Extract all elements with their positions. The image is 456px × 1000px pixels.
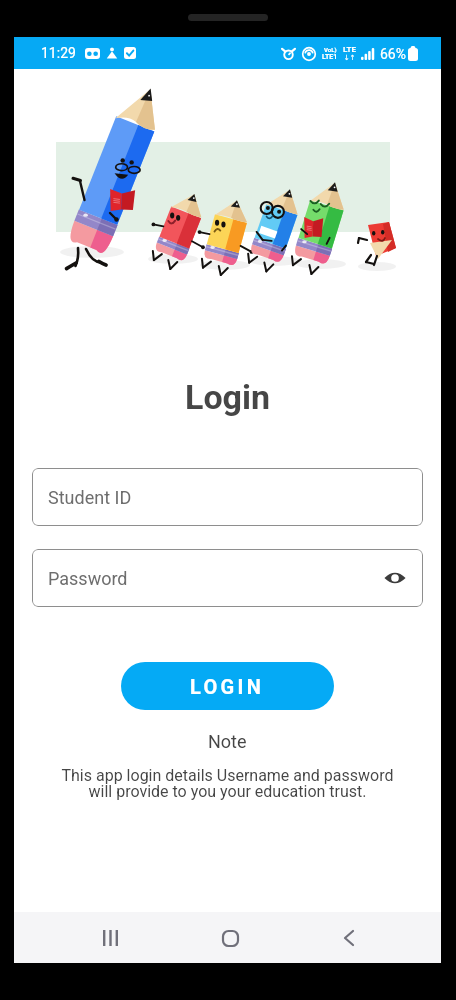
staticText: Note (208, 731, 247, 752)
button[interactable]: LOGIN (121, 662, 334, 710)
button[interactable]: Recents (86, 914, 134, 962)
button[interactable]: Show password (379, 562, 411, 594)
button[interactable]: Home (206, 914, 254, 962)
staticText: ↓↑ (344, 54, 356, 62)
staticText: LTE (343, 45, 356, 54)
staticText: VoL) (324, 46, 337, 53)
staticText: Login (185, 377, 271, 417)
button[interactable]: Student ID (32, 468, 423, 526)
button[interactable]: Back (325, 914, 373, 962)
button[interactable]: Password (32, 549, 423, 607)
staticText: 66% (380, 46, 406, 62)
staticText: 11:29 (41, 45, 76, 61)
staticText: LOGIN (190, 675, 265, 698)
staticText: Student ID (48, 487, 132, 508)
staticText: LTE1 (322, 53, 338, 61)
staticText: This app login details Username and pass… (61, 766, 394, 801)
staticText: Password (48, 568, 128, 589)
